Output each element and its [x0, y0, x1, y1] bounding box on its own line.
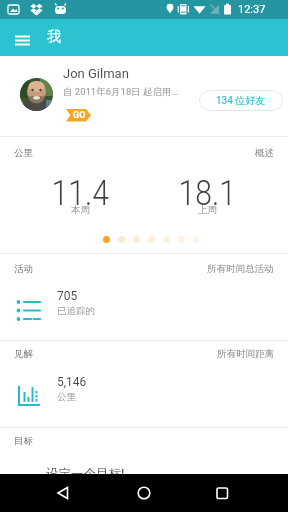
- button[interactable]: [118, 236, 125, 243]
- staticText: 18.1: [179, 173, 236, 214]
- button[interactable]: [206, 477, 238, 509]
- staticText: 我: [47, 28, 61, 46]
- staticText: 设定一个目标!: [46, 465, 125, 482]
- staticText: 活动: [14, 263, 33, 275]
- button[interactable]: [103, 236, 110, 243]
- button[interactable]: 134 位好友: [199, 90, 283, 111]
- button[interactable]: [193, 236, 200, 243]
- button[interactable]: [133, 236, 140, 243]
- staticText: 11.4: [52, 173, 109, 214]
- button[interactable]: [20, 78, 53, 111]
- staticText: 目标: [14, 435, 33, 447]
- staticText: 自 2011年6月18日 起启用…: [63, 86, 178, 98]
- staticText: 已追踪的: [57, 305, 95, 317]
- button[interactable]: [47, 477, 79, 509]
- staticText: 上周: [198, 204, 217, 216]
- button[interactable]: 705: [57, 289, 95, 317]
- staticText: 公里: [14, 147, 33, 159]
- button[interactable]: GO: [66, 109, 91, 122]
- button[interactable]: 5,146: [57, 375, 87, 403]
- staticText: 705: [57, 289, 78, 303]
- button[interactable]: [128, 477, 160, 509]
- staticText: 本周: [71, 204, 90, 216]
- staticText: GO: [73, 110, 86, 121]
- button[interactable]: [9, 31, 37, 49]
- staticText: Jon Gilman: [63, 66, 129, 81]
- staticText: 公里: [57, 391, 76, 403]
- staticText: 12:37: [238, 3, 266, 16]
- button[interactable]: 所有时间总活动: [207, 263, 274, 275]
- button[interactable]: 所有时间距离: [217, 348, 274, 360]
- staticText: 5,146: [57, 375, 87, 389]
- staticText: 见解: [14, 348, 33, 360]
- staticText: 134 位好友: [216, 94, 266, 107]
- button[interactable]: 概述: [255, 147, 274, 159]
- button[interactable]: [163, 236, 170, 243]
- button[interactable]: [178, 236, 185, 243]
- button[interactable]: [148, 236, 155, 243]
